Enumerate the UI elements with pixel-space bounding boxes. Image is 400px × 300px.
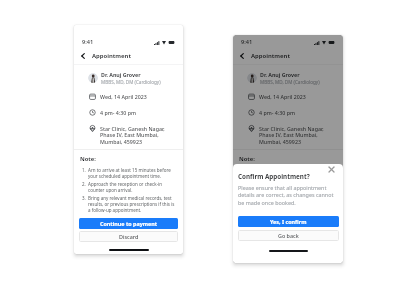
staticText: Dr. Anuj Grover: [101, 71, 141, 78]
staticText: Appointment: [92, 52, 131, 60]
staticText: Star Clinic, Ganesh Nagar, Phase IV, Eas…: [100, 125, 165, 146]
staticText: Discard: [119, 233, 139, 240]
staticText: Arn to arrive at least 15 minutes before…: [247, 167, 337, 179]
staticText: 2.: [241, 181, 245, 187]
staticText: Star Clinic, Ganesh Nagar, Phase IV, Eas…: [259, 125, 324, 146]
staticText: 4 pm- 4:30 pm: [259, 109, 295, 116]
staticText: 3.: [82, 195, 86, 201]
staticText: MBBS, MD, DM (Cardiology): [260, 79, 320, 85]
button[interactable]: Go back: [238, 230, 339, 241]
staticText: Approach the reception or check-in count…: [247, 181, 337, 193]
button[interactable]: Dr. Anuj Grover: [247, 71, 320, 85]
staticText: 9:41: [241, 38, 253, 46]
staticText: Arn to arrive at least 15 minutes before…: [88, 167, 178, 179]
button[interactable]: Back: [237, 51, 246, 60]
staticText: Go back: [278, 232, 299, 239]
staticText: Appointment: [251, 52, 290, 60]
staticText: Wed, 14 April 2023: [100, 93, 147, 100]
staticText: Bring any relevant medical records, test…: [88, 195, 178, 213]
button[interactable]: Yes, I confirm: [238, 216, 339, 227]
staticText: Please ensure that all appointment detai…: [238, 184, 338, 207]
staticText: Continue to payment: [100, 220, 158, 227]
staticText: Confirm Appointment?: [238, 172, 310, 181]
staticText: MBBS, MD, DM (Cardiology): [101, 79, 161, 85]
button[interactable]: Discard: [79, 231, 178, 242]
staticText: Yes, I confirm: [270, 218, 307, 225]
staticText: Note:: [239, 155, 255, 163]
staticText: 4 pm- 4:30 pm: [100, 109, 136, 116]
staticText: 3.: [241, 195, 245, 201]
staticText: Approach the reception or check-in count…: [88, 181, 178, 193]
staticText: Wed, 14 April 2023: [259, 93, 306, 100]
staticText: 9:41: [82, 38, 94, 46]
button[interactable]: Continue to payment: [238, 218, 338, 229]
button[interactable]: Dr. Anuj Grover: [88, 71, 161, 85]
button[interactable]: Back: [78, 51, 87, 60]
button[interactable]: Close: [326, 164, 336, 174]
staticText: Dr. Anuj Grover: [260, 71, 300, 78]
staticText: Note:: [80, 155, 96, 163]
staticText: Continue to payment: [259, 220, 317, 227]
staticText: 2.: [82, 181, 86, 187]
button[interactable]: Discard: [238, 231, 338, 242]
staticText: 1.: [82, 167, 86, 173]
staticText: Discard: [278, 233, 298, 240]
button[interactable]: Continue to payment: [79, 218, 178, 229]
staticText: Bring any relevant medical records, test…: [247, 195, 337, 213]
